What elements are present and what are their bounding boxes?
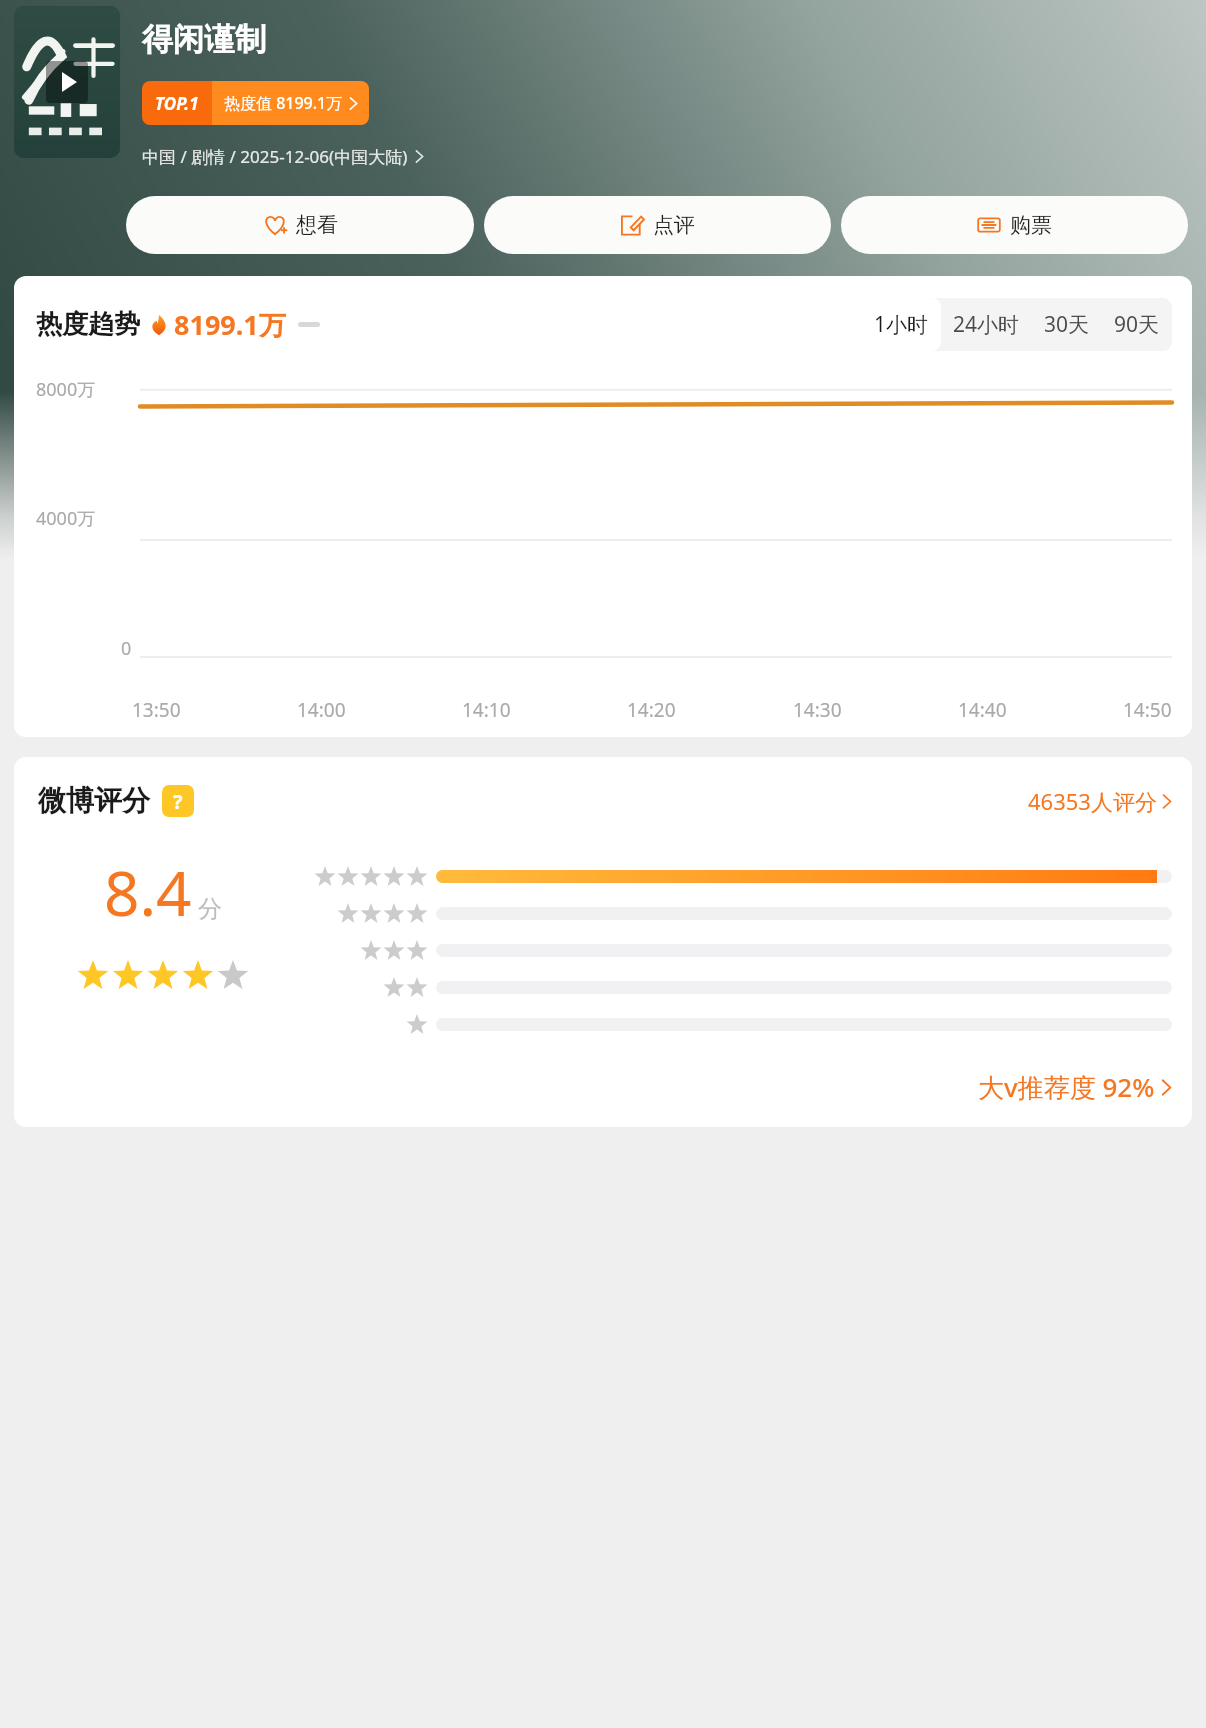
staticText: 得闲谨制	[142, 20, 266, 59]
staticText: 14:10	[462, 697, 511, 723]
staticText: 14:50	[1123, 697, 1172, 723]
button[interactable]: 46353人评分	[1028, 786, 1172, 816]
button[interactable]: 大v推荐度 92%	[38, 1069, 1172, 1105]
button[interactable]: Rating info	[162, 785, 194, 817]
button[interactable]: 点评	[484, 196, 831, 254]
staticText: 8.4	[104, 850, 192, 934]
button[interactable]: TOP.1	[142, 81, 369, 125]
button[interactable]: 中国 / 剧情 / 2025-12-06(中国大陆)	[142, 145, 424, 168]
button[interactable]: 24小时	[941, 298, 1032, 351]
staticText: 90天	[1114, 310, 1160, 339]
staticText: 点评	[653, 212, 695, 238]
button[interactable]: 购票	[841, 196, 1188, 254]
staticText: 分	[198, 894, 222, 924]
staticText: 8199.1万	[174, 306, 286, 343]
staticText: 14:20	[627, 697, 676, 723]
staticText: 1小时	[874, 310, 929, 339]
staticText: 13:50	[132, 697, 181, 723]
staticText: 微博评分	[38, 783, 150, 818]
staticText: 8000万	[36, 377, 96, 402]
button[interactable]: 1小时	[862, 298, 941, 351]
staticText: TOP.1	[155, 92, 199, 115]
staticText: ?	[173, 788, 183, 815]
button[interactable]: Play trailer	[14, 6, 120, 158]
staticText: 46353人评分	[1028, 786, 1157, 816]
button[interactable]: 90天	[1102, 298, 1172, 351]
staticText: 14:00	[297, 697, 346, 723]
staticText: 24小时	[953, 310, 1020, 339]
staticText: 大v推荐度 92%	[978, 1069, 1155, 1105]
staticText: 14:30	[793, 697, 842, 723]
staticText: 热度值 8199.1万	[224, 92, 343, 114]
staticText: 想看	[296, 212, 338, 238]
staticText: 热度趋势	[36, 308, 140, 341]
button[interactable]: 想看	[126, 196, 474, 254]
staticText: 0	[121, 636, 132, 661]
staticText: 中国 / 剧情 / 2025-12-06(中国大陆)	[142, 145, 408, 168]
staticText: 14:40	[958, 697, 1007, 723]
button[interactable]: 30天	[1032, 298, 1102, 351]
staticText: 30天	[1044, 310, 1090, 339]
staticText: 4000万	[36, 506, 96, 531]
staticText: 购票	[1010, 212, 1052, 238]
